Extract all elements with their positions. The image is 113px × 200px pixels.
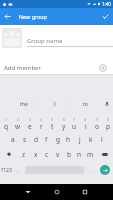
button[interactable]: 0 [102,117,113,131]
staticText: ?123 [1,167,12,174]
staticText: y [62,122,66,131]
button[interactable]: j [74,132,85,146]
button[interactable]: ?123 [0,163,13,177]
staticText: z [22,150,26,159]
button[interactable]: g [52,132,63,146]
staticText: o [95,122,99,131]
button[interactable]: 9 [91,117,102,131]
staticText: l [101,135,103,144]
button[interactable]: k [85,132,96,146]
staticText: 0 [107,117,110,122]
staticText: 6 [63,117,66,122]
staticText: b [67,150,71,159]
staticText: e [28,122,32,131]
button[interactable]: Navigate up [0,8,15,25]
staticText: k [89,135,93,144]
button[interactable]: h [63,132,74,146]
staticText: , [17,167,19,174]
button[interactable]: to [71,96,101,111]
staticText: j [79,135,81,144]
button[interactable]: Recent apps [71,184,99,200]
button[interactable]: v [52,147,63,161]
button[interactable]: m [85,147,96,161]
button[interactable]: Shift [0,147,18,161]
staticText: 7 [73,117,76,122]
button[interactable]: c [41,147,52,161]
staticText: f [45,135,48,144]
staticText: a [11,135,15,144]
staticText: p [106,122,110,131]
button[interactable]: Add member [0,61,113,74]
button[interactable]: Backspace [96,147,113,161]
button[interactable]: 6 [58,117,69,131]
button[interactable]: the [10,96,39,111]
button[interactable]: . [86,163,96,177]
staticText: h [66,135,71,144]
button[interactable]: Enter [100,165,110,175]
staticText: 1 [5,117,8,122]
staticText: 5 [51,117,54,122]
button[interactable]: 8 [80,117,91,131]
staticText: to [83,100,89,107]
button[interactable]: d [30,132,41,146]
staticText: q [4,122,8,131]
staticText: u [72,122,77,131]
staticText: 2 [17,117,20,122]
button[interactable]: Voice input [101,96,113,111]
button[interactable]: Back [14,184,42,200]
button[interactable]: 7 [69,117,80,131]
staticText: Add member [4,64,41,72]
button[interactable]: b [63,147,74,161]
button[interactable]: Home [43,184,71,200]
button[interactable]: s [19,132,30,146]
staticText: 4 [40,117,43,122]
staticText: the [20,100,29,107]
button[interactable]: 5 [47,117,58,131]
button[interactable]: 3 [24,117,36,131]
button[interactable]: x [30,147,41,161]
button[interactable]: z [18,147,30,161]
button[interactable]: 4 [36,117,47,131]
staticText: 3 [29,117,32,122]
button[interactable]: Group photo [2,28,22,48]
staticText: 8 [84,117,87,122]
button[interactable]: Done [97,8,113,25]
staticText: I [54,100,56,107]
staticText: s [23,135,27,144]
staticText: v [56,150,60,159]
button[interactable]: n [74,147,85,161]
staticText: g [56,135,60,144]
staticText: n [77,150,82,159]
button[interactable]: l [96,132,107,146]
staticText: d [34,135,38,144]
staticText: m [87,150,94,159]
staticText: New group [19,13,48,20]
staticText: x [34,150,38,159]
staticText: Group name [27,37,63,45]
button[interactable]: 2 [12,117,24,131]
staticText: 1:40 [102,1,111,7]
button[interactable]: a [7,132,19,146]
button[interactable]: , [13,163,23,177]
staticText: . [90,167,92,174]
button[interactable]: 1 [0,117,12,131]
button[interactable]: I [40,96,70,111]
staticText: w [15,122,21,131]
staticText: c [45,150,49,159]
staticText: 9 [96,117,99,122]
staticText: t [51,122,54,131]
staticText: r [40,122,43,131]
button[interactable]: f [41,132,52,146]
staticText: i [85,122,87,131]
